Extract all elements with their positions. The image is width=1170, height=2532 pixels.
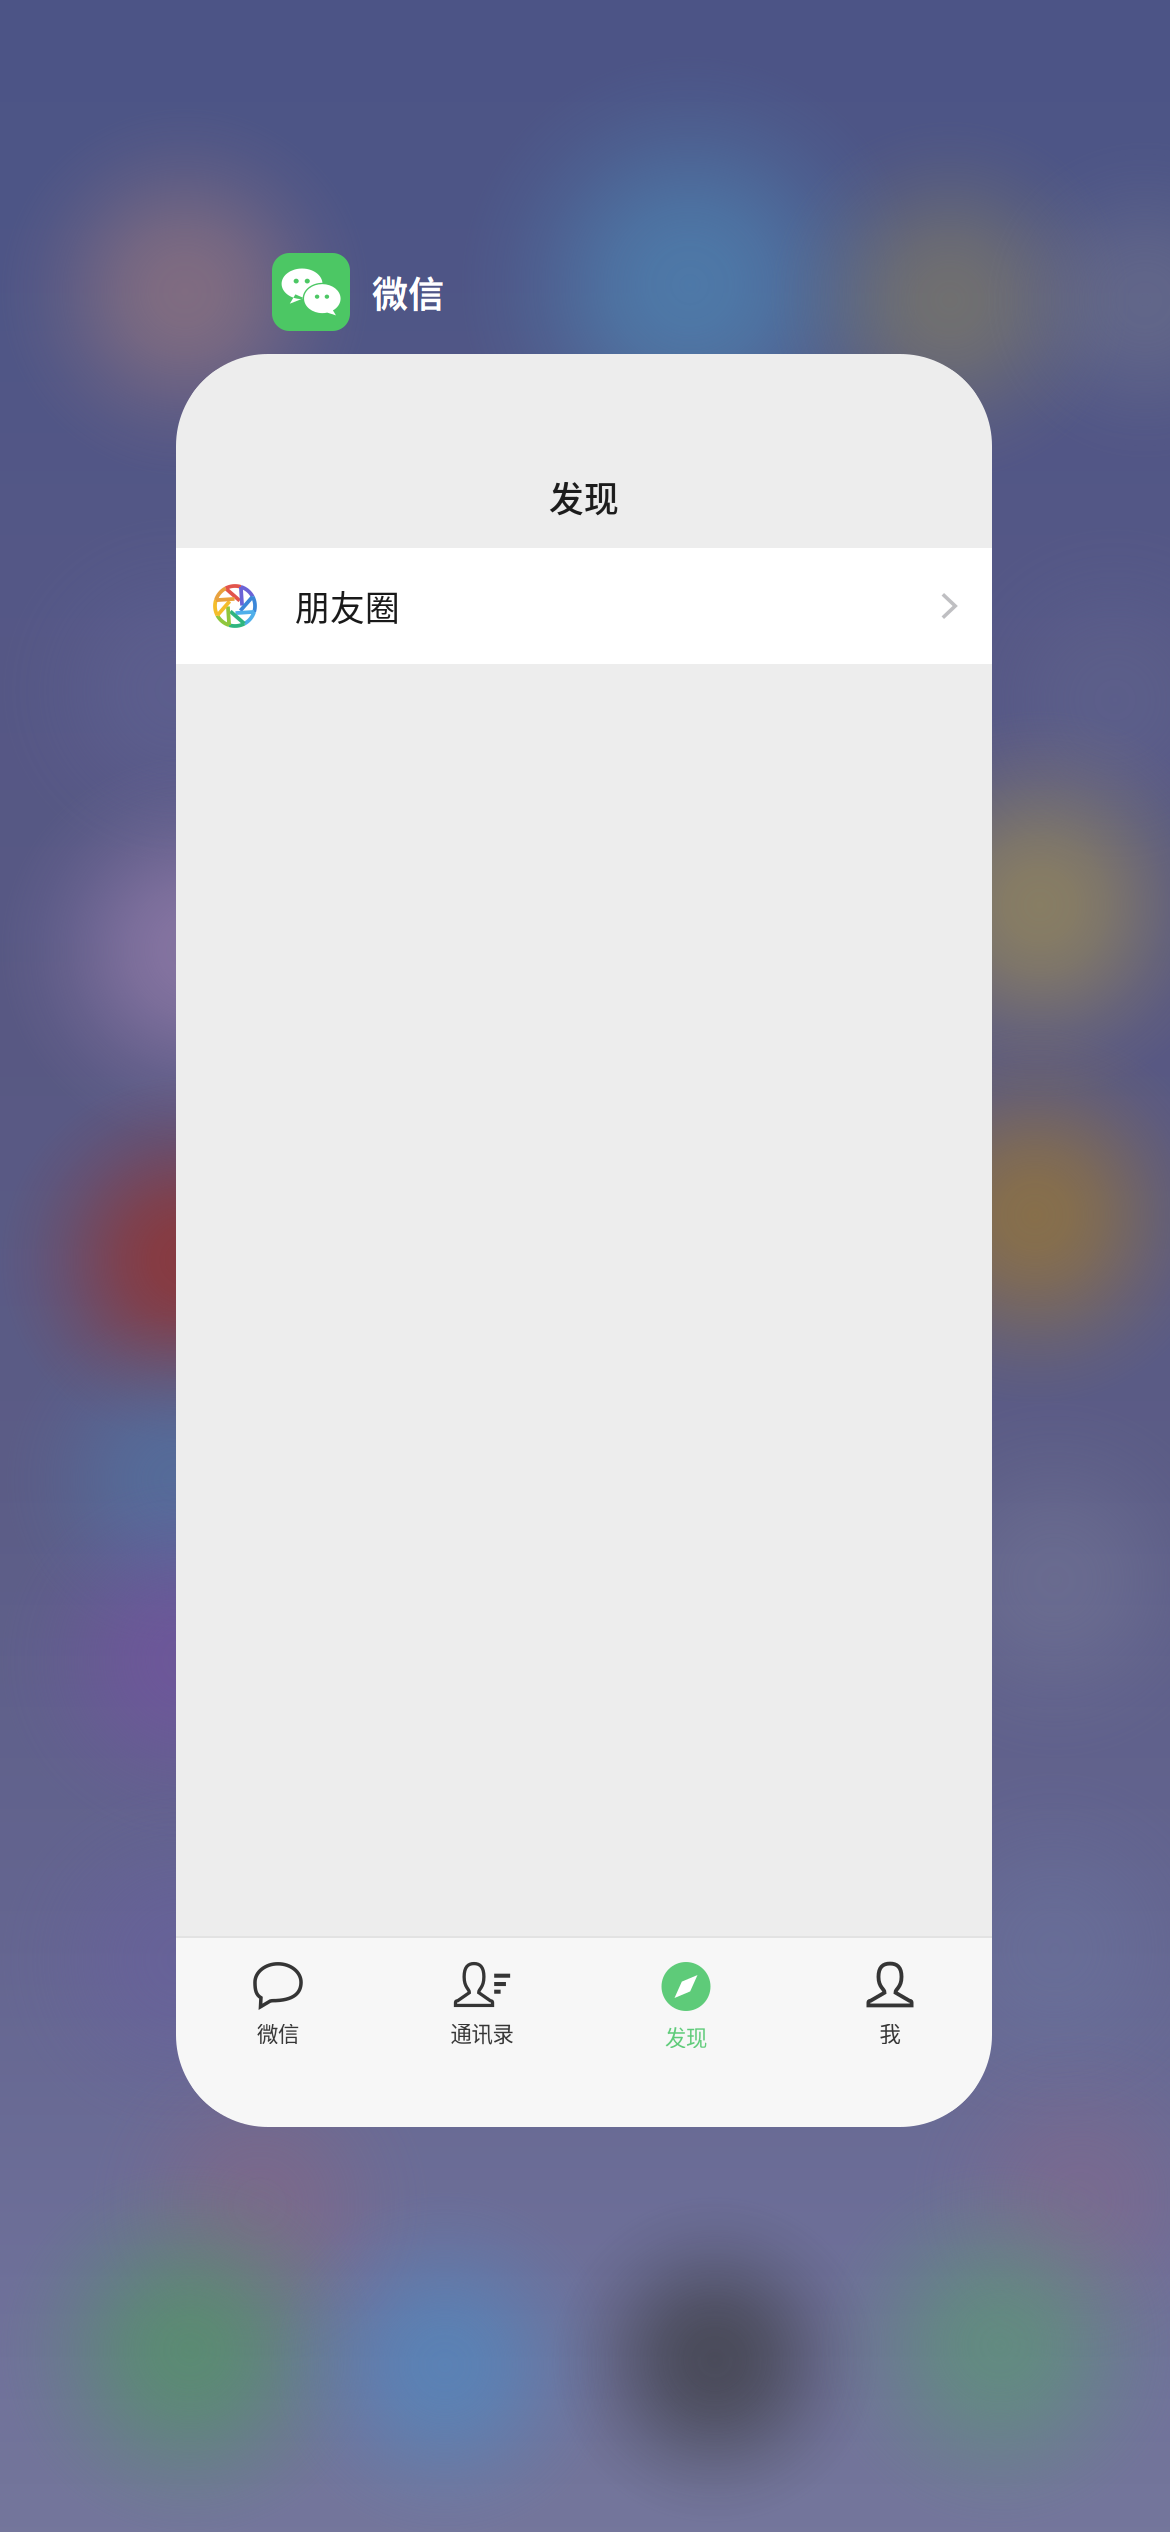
staticText: 我 bbox=[879, 2017, 900, 2048]
staticText: 发现 bbox=[549, 472, 619, 522]
button[interactable]: 朋友圈 bbox=[176, 548, 992, 664]
staticText: 微信 bbox=[372, 266, 444, 318]
staticText: 微信 bbox=[257, 2017, 299, 2048]
button[interactable]: 通讯录 bbox=[380, 1938, 584, 2127]
staticText: 朋友圈 bbox=[295, 581, 400, 631]
button[interactable]: 发现 bbox=[584, 1938, 788, 2127]
button[interactable]: 我 bbox=[788, 1938, 992, 2127]
staticText: 发现 bbox=[665, 2021, 707, 2052]
button[interactable]: 微信 bbox=[176, 1938, 380, 2127]
staticText: 通讯录 bbox=[450, 2017, 513, 2048]
